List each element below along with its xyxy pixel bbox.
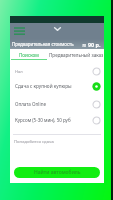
staticText: Сдача с крупной купюры xyxy=(15,83,92,89)
button[interactable]: Collapse xyxy=(53,25,62,33)
button[interactable]: Найти автомобиль xyxy=(14,167,100,178)
button[interactable]: Сдача с крупной купюры xyxy=(10,79,104,93)
staticText: Нал xyxy=(15,69,92,74)
staticText: Оплата Online xyxy=(15,101,92,107)
staticText: Найти автомобиль xyxy=(34,169,81,176)
staticText: Понадобится сдача xyxy=(14,139,54,145)
staticText: Предварительная стоимость xyxy=(12,41,74,47)
staticText: Курсом (5-30 мин), 50 руб xyxy=(15,117,92,123)
button[interactable]: Курсом (5-30 мин), 50 руб xyxy=(10,113,104,127)
button[interactable]: Поиском xyxy=(10,49,48,60)
button[interactable]: Предварительный заказ xyxy=(48,49,104,60)
button[interactable]: Menu xyxy=(13,24,26,38)
staticText: Предварительный заказ xyxy=(49,52,104,58)
staticText: Поиском xyxy=(19,52,39,58)
staticText: ≈ 90 р. xyxy=(82,41,101,48)
button[interactable]: Нал xyxy=(10,64,104,78)
button[interactable]: Оплата Online xyxy=(10,97,104,111)
